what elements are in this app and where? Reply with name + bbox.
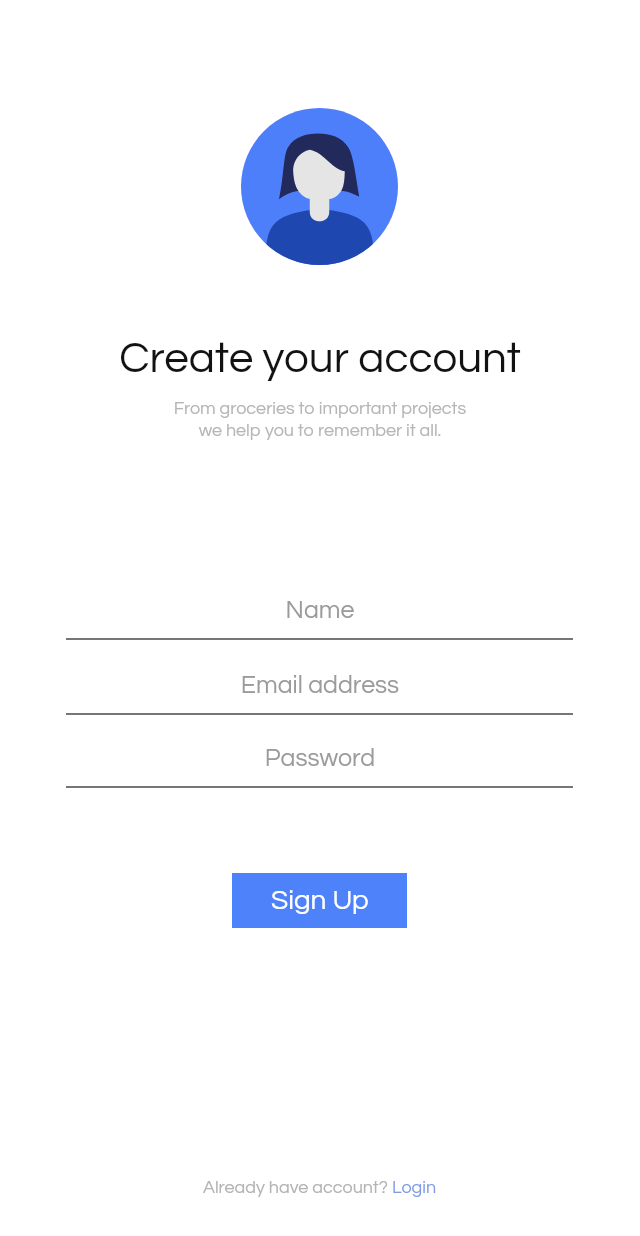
staticText: Password <box>0 745 640 771</box>
staticText: Login <box>392 1178 437 1197</box>
staticText: Name <box>0 597 640 623</box>
staticText: From groceries to important projects we … <box>0 399 640 439</box>
staticText: Create your account <box>0 336 640 381</box>
staticText: Sign Up <box>271 886 369 915</box>
staticText: Already have account? <box>203 1178 392 1197</box>
button[interactable]: Sign Up <box>232 873 407 928</box>
button[interactable]: Password <box>0 745 640 787</box>
button[interactable]: Email address <box>0 672 640 714</box>
staticText: Email address <box>0 672 640 698</box>
button[interactable]: Login <box>392 1178 437 1197</box>
button[interactable]: Name <box>0 597 640 639</box>
